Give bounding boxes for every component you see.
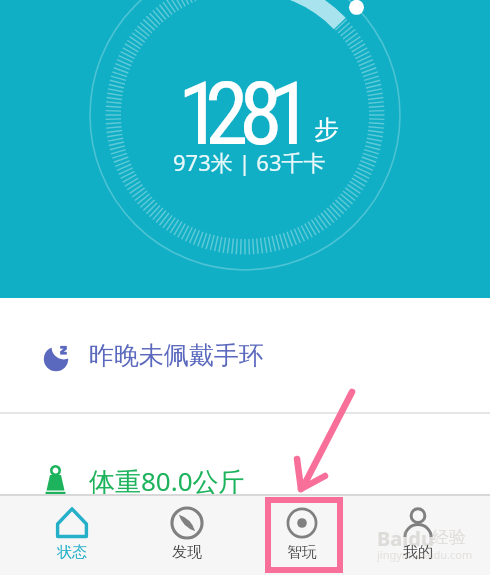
staticText: 经验 [432,527,466,548]
button[interactable]: 智玩 [244,494,360,575]
staticText: 8 [239,62,283,165]
staticText: 973米 | 63千卡 [173,147,326,177]
staticText: 步 [314,114,339,145]
button[interactable]: 状态 [14,494,129,575]
staticText: jingyan.baidu.com [377,547,473,562]
staticText: 2 [205,62,249,165]
staticText: 发现 [172,543,202,562]
staticText: 昨晚未佩戴手环 [89,340,264,371]
button[interactable]: 我的 [360,494,476,575]
staticText: 1 [269,62,313,165]
staticText: 状态 [57,543,87,562]
staticText: 体重80.0公斤 [89,463,245,499]
staticText: Baidu [377,525,434,552]
staticText: 智玩 [287,543,317,562]
button[interactable]: 发现 [129,494,244,575]
button[interactable]: 体重80.0公斤 [0,414,490,494]
staticText: 我的 [403,543,433,562]
staticText: 1 [178,62,222,165]
button[interactable]: 昨晚未佩戴手环 [0,298,490,412]
